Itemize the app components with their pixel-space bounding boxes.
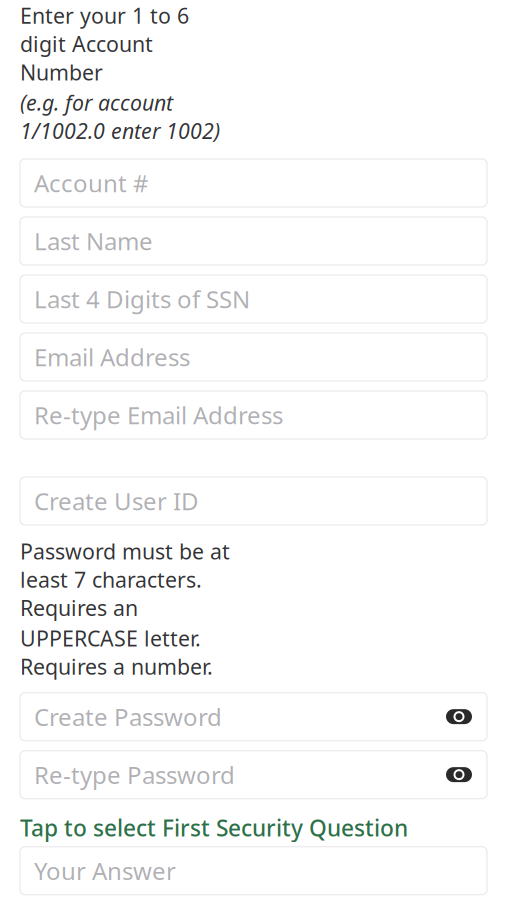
button[interactable]: Tap to select First Security Question (20, 815, 487, 841)
staticText: Account # (34, 167, 149, 199)
staticText: Tap to select First Security Question (20, 813, 408, 843)
staticText: Create Password (34, 701, 222, 733)
staticText: Last 4 Digits of SSN (34, 283, 250, 315)
button[interactable]: Re-type Email Address (20, 391, 487, 439)
staticText: Re-type Password (34, 759, 235, 791)
button[interactable]: Re-type Password (20, 751, 487, 799)
button[interactable]: Last Name (20, 217, 487, 265)
button[interactable]: Account # (20, 159, 487, 207)
staticText: (e.g. for account 1/1002.0 enter 1002) (20, 88, 220, 145)
staticText: Last Name (34, 225, 153, 257)
staticText: Re-type Email Address (34, 399, 283, 431)
staticText: Your Answer (34, 855, 176, 887)
staticText: Email Address (34, 341, 190, 373)
staticText: Create User ID (34, 485, 199, 517)
button[interactable]: Last 4 Digits of SSN (20, 275, 487, 323)
button[interactable]: Email Address (20, 333, 487, 381)
staticText: Enter your 1 to 6 digit Account Number (20, 1, 189, 86)
staticText: Password must be at least 7 characters. … (20, 537, 230, 622)
button[interactable]: Create User ID (20, 477, 487, 525)
button[interactable]: Create Password (20, 693, 487, 741)
button[interactable]: Your Answer (20, 847, 487, 895)
staticText: UPPERCASE letter. Requires a number. (20, 624, 213, 681)
